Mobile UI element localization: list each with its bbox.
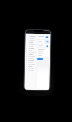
button[interactable] [45, 40, 49, 43]
button[interactable] [26, 39, 35, 41]
button[interactable] [26, 55, 35, 57]
button[interactable] [38, 49, 48, 56]
button[interactable] [26, 37, 35, 39]
button[interactable] [26, 53, 35, 55]
button[interactable] [26, 49, 35, 51]
button[interactable] [26, 61, 35, 63]
button[interactable] [26, 57, 35, 59]
button[interactable]: Continue [37, 58, 43, 60]
button[interactable] [26, 51, 35, 53]
button[interactable] [26, 45, 35, 47]
button[interactable]: Open item [38, 44, 48, 47]
button[interactable]: Status online [25, 30, 51, 34]
button[interactable] [37, 40, 44, 43]
button[interactable]: Open item [46, 45, 48, 47]
button[interactable] [26, 41, 35, 43]
button[interactable]: Primary action [45, 36, 48, 38]
button[interactable]: Primary action [38, 36, 48, 38]
button[interactable] [26, 47, 35, 49]
button[interactable] [26, 43, 35, 45]
button[interactable] [26, 35, 35, 37]
button[interactable] [26, 59, 35, 61]
button[interactable] [26, 67, 35, 69]
button[interactable] [26, 63, 35, 65]
button[interactable] [26, 65, 35, 67]
button[interactable] [26, 69, 35, 71]
